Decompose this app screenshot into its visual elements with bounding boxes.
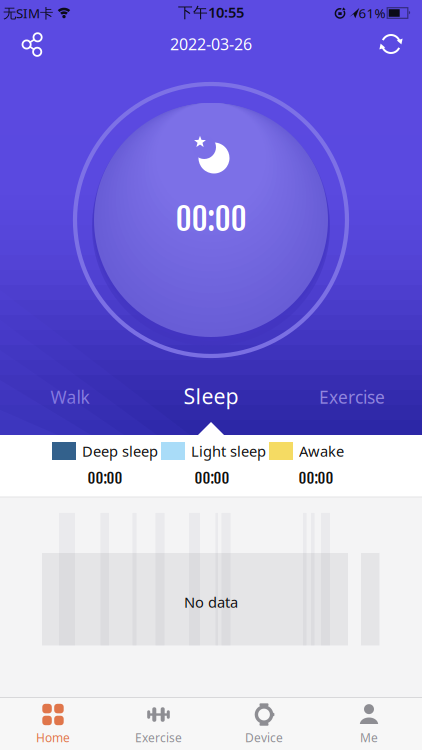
button[interactable] [16, 29, 46, 59]
staticText: Exercise [319, 385, 385, 408]
staticText: Exercise [135, 729, 182, 745]
staticText: Deep sleep [82, 441, 158, 461]
button[interactable]: 2022-03-26 [170, 33, 252, 55]
staticText: 00:00 [298, 468, 333, 487]
button[interactable]: Me [324, 699, 414, 749]
staticText: Awake [299, 441, 344, 461]
staticText: Me [360, 729, 378, 745]
staticText: 61% [358, 4, 385, 22]
staticText: Walk [50, 385, 89, 408]
staticText: 2022-03-26 [170, 33, 252, 55]
button[interactable]: Exercise [113, 699, 203, 749]
button[interactable]: Sleep [156, 376, 266, 416]
button[interactable]: Exercise [297, 377, 407, 417]
staticText: 00:00 [175, 199, 246, 239]
staticText: 无SIM卡 [3, 4, 53, 22]
staticText: Light sleep [191, 441, 266, 461]
staticText: Sleep [183, 382, 238, 410]
staticText: Home [36, 729, 70, 745]
button[interactable]: Device [219, 699, 309, 749]
button[interactable] [376, 29, 406, 59]
staticText: No data [184, 592, 238, 612]
staticText: 00:00 [87, 468, 122, 487]
button[interactable]: Home [8, 699, 98, 749]
staticText: 00:00 [194, 468, 229, 487]
staticText: 下午10:55 [178, 2, 244, 22]
staticText: Device [245, 729, 283, 745]
button[interactable]: Walk [20, 377, 120, 417]
